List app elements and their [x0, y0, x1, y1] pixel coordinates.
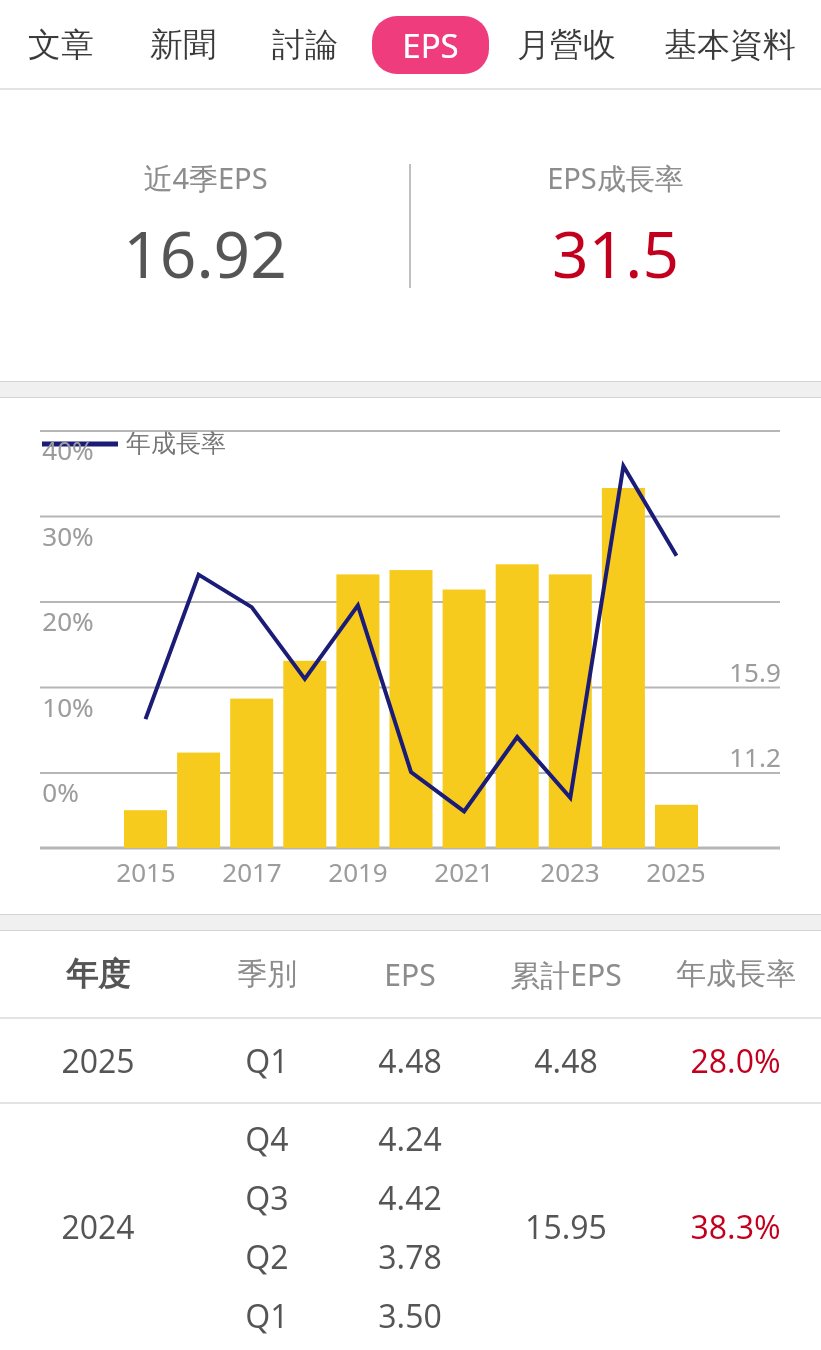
staticText: 10%	[42, 689, 94, 724]
button[interactable]: 月營收	[494, 0, 638, 89]
staticText: Q3	[245, 1176, 289, 1220]
staticText: 3.78	[378, 1235, 442, 1279]
staticText: 2023	[540, 854, 600, 889]
staticText: 年成長率	[126, 428, 226, 459]
staticText: Q1	[245, 1039, 289, 1083]
button[interactable]: 基本資料	[638, 0, 821, 89]
staticText: Q1	[245, 1294, 289, 1338]
staticText: 11.2	[729, 739, 781, 774]
staticText: 新聞	[150, 24, 216, 66]
staticText: 基本資料	[664, 24, 796, 66]
staticText: 28.0%	[690, 1039, 781, 1083]
staticText: 文章	[28, 24, 94, 66]
staticText: 0%	[42, 774, 79, 809]
staticText: 累計EPS	[510, 954, 622, 995]
staticText: EPS	[384, 954, 436, 995]
button[interactable]: 文章	[0, 0, 122, 89]
staticText: EPS	[402, 23, 459, 68]
button[interactable]: 新聞	[122, 0, 244, 89]
staticText: 月營收	[517, 24, 616, 66]
staticText: EPS成長率	[547, 158, 684, 198]
staticText: Q4	[245, 1117, 289, 1161]
button[interactable]: 2025	[0, 1019, 821, 1102]
staticText: 2021	[434, 854, 494, 889]
button[interactable]: 討論	[244, 0, 366, 89]
staticText: 15.9	[729, 654, 781, 689]
staticText: 16.92	[123, 210, 287, 297]
staticText: Q2	[245, 1235, 289, 1279]
staticText: 3.50	[378, 1294, 442, 1338]
button[interactable]: EPS	[366, 0, 494, 89]
staticText: 31.5	[552, 210, 679, 297]
staticText: 4.42	[378, 1176, 442, 1220]
staticText: 2017	[222, 854, 282, 889]
staticText: 年度	[66, 954, 130, 994]
staticText: 討論	[272, 24, 338, 66]
staticText: 2015	[116, 854, 176, 889]
staticText: 2024	[61, 1205, 135, 1249]
staticText: 2019	[328, 854, 388, 889]
staticText: 年成長率	[676, 955, 796, 993]
staticText: 30%	[42, 518, 94, 553]
staticText: 20%	[42, 603, 94, 638]
staticText: 40%	[42, 432, 94, 467]
button[interactable]: 2024	[0, 1104, 821, 1350]
staticText: 4.48	[534, 1039, 598, 1083]
staticText: 2025	[646, 854, 706, 889]
staticText: 38.3%	[690, 1205, 781, 1249]
staticText: 2025	[61, 1039, 135, 1083]
staticText: 近4季EPS	[143, 158, 268, 198]
staticText: 季別	[237, 955, 297, 993]
staticText: 4.48	[378, 1039, 442, 1083]
staticText: 15.95	[525, 1205, 607, 1249]
staticText: 4.24	[378, 1117, 442, 1161]
